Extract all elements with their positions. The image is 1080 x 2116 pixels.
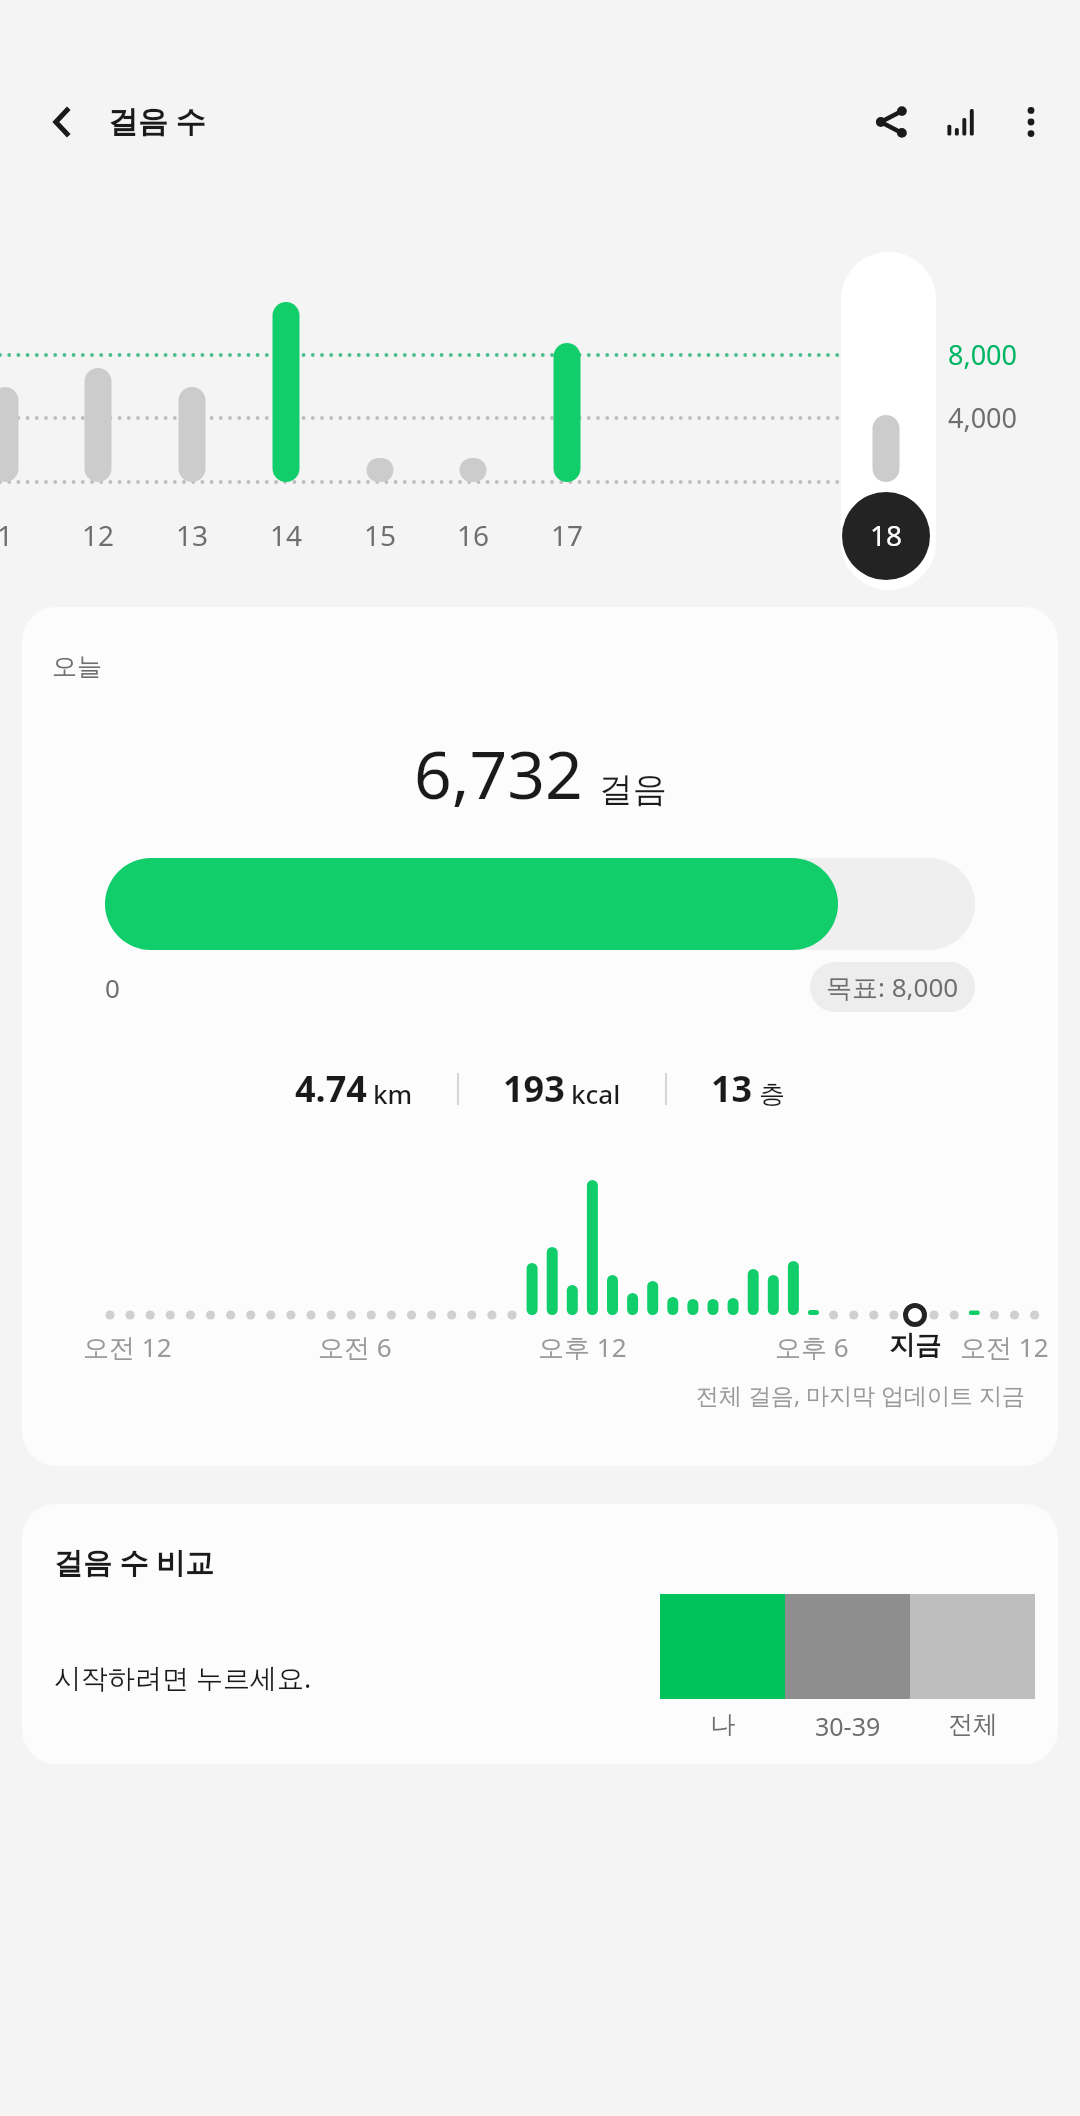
button[interactable]: More options	[996, 87, 1066, 157]
staticText: 걸음	[599, 768, 667, 811]
staticText: 층	[759, 1078, 785, 1111]
button[interactable]: Back	[28, 87, 98, 157]
staticText: 걸음 수 비교	[54, 1542, 215, 1582]
staticText: 오전 6	[318, 1329, 392, 1365]
staticText: 13	[176, 516, 209, 554]
staticText: 16	[457, 516, 490, 554]
staticText: 전체	[948, 1709, 998, 1740]
button[interactable]: Share	[856, 87, 926, 157]
staticText: 0	[105, 970, 120, 1005]
staticText: 걸음 수	[108, 100, 206, 141]
staticText: 30-39	[815, 1709, 881, 1743]
staticText: 18	[870, 516, 903, 554]
staticText: 193	[503, 1064, 565, 1113]
staticText: 시작하려면 누르세요.	[54, 1659, 312, 1696]
button[interactable]: Chart	[926, 87, 996, 157]
staticText: 1	[0, 516, 14, 554]
button[interactable]: 걸음 수 비교	[22, 1504, 1058, 1764]
staticText: 8,000	[948, 336, 1018, 373]
staticText: kcal	[571, 1076, 621, 1111]
staticText: 15	[364, 516, 397, 554]
staticText: 오후 12	[538, 1329, 627, 1365]
staticText: 목표: 8,000	[826, 969, 959, 1005]
staticText: 지금	[889, 1329, 941, 1362]
staticText: 13	[711, 1064, 753, 1113]
button[interactable]: 오늘	[22, 607, 1058, 1466]
staticText: 오전 12	[83, 1329, 172, 1365]
staticText: km	[373, 1076, 413, 1111]
staticText: 12	[82, 516, 115, 554]
staticText: 오늘	[52, 651, 102, 682]
staticText: 오후 6	[775, 1329, 849, 1365]
staticText: 4,000	[948, 399, 1018, 436]
staticText: 6,732	[414, 728, 583, 818]
staticText: 나	[710, 1709, 735, 1740]
staticText: 17	[551, 516, 584, 554]
staticText: 4.74	[295, 1064, 367, 1113]
staticText: 오전 12	[960, 1329, 1049, 1365]
staticText: 14	[270, 516, 303, 554]
staticText: 전체 걸음, 마지막 업데이트 지금	[696, 1379, 1026, 1410]
